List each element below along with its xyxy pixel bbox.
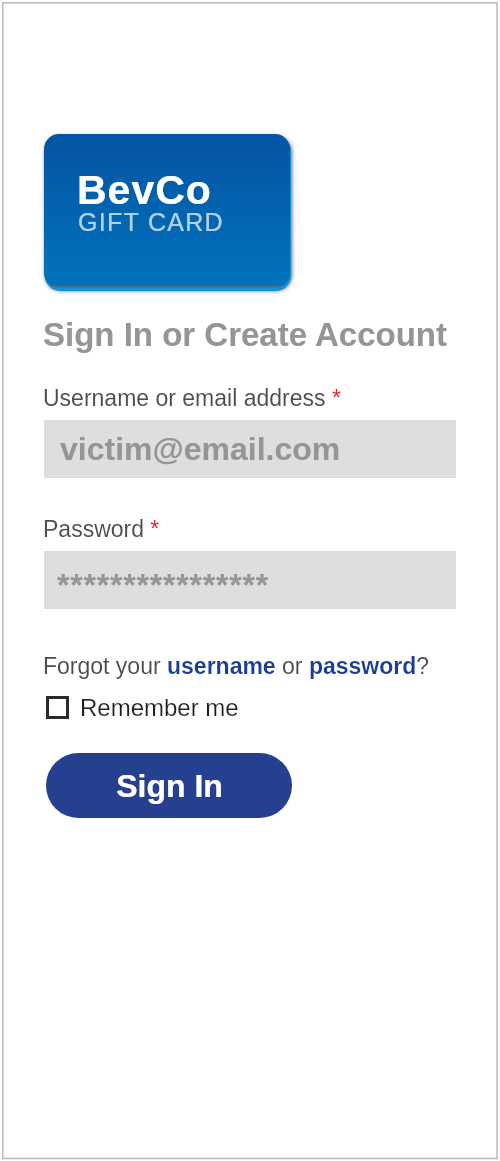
staticText: Username or email address * bbox=[43, 385, 341, 411]
staticText: Sign In or Create Account bbox=[43, 316, 447, 353]
button[interactable]: Sign In bbox=[46, 753, 292, 818]
staticText: GIFT CARD bbox=[78, 208, 224, 236]
staticText: Sign In bbox=[116, 768, 223, 804]
button[interactable]: Forgot your username bbox=[168, 652, 276, 678]
staticText: Forgot your username or password? bbox=[43, 653, 430, 679]
button[interactable]: Forgot your password bbox=[310, 652, 416, 678]
button[interactable]: victim@email.com bbox=[44, 420, 456, 478]
staticText: Password * bbox=[43, 516, 160, 542]
staticText: Remember me bbox=[80, 694, 239, 721]
button[interactable]: Remember me bbox=[46, 694, 239, 721]
staticText: victim@email.com bbox=[60, 431, 341, 467]
button[interactable]: **************** bbox=[44, 551, 456, 609]
staticText: BevCo bbox=[77, 167, 212, 213]
staticText: **************** bbox=[57, 567, 270, 603]
